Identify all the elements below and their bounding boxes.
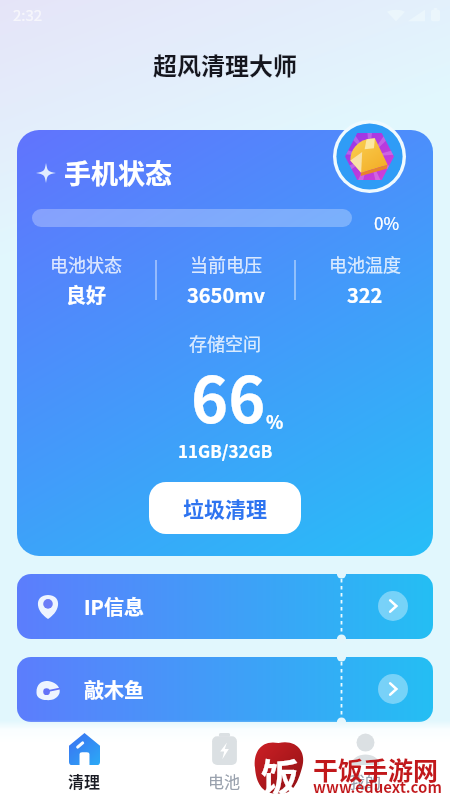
staticText: 敲木鱼 [84,675,144,704]
staticText: 干饭手游网 [313,751,439,787]
button[interactable]: 进入 [378,591,408,621]
button[interactable]: 电池 [154,720,295,800]
staticText: 清理 [68,769,101,792]
button[interactable]: IP信息 [17,574,433,639]
staticText: 我的 [349,769,382,792]
button[interactable]: 垃圾清理 [149,482,301,534]
staticText: 322 [347,280,383,309]
staticText: www.eduext.com [313,776,442,798]
button[interactable]: 清理 [14,720,154,800]
staticText: 2:32 [13,4,43,26]
staticText: 3650mv [187,280,265,309]
staticText: 当前电压 [190,251,262,277]
staticText: 饭 [261,747,300,800]
button[interactable]: 我的 [295,720,436,800]
staticText: 垃圾清理 [183,493,267,523]
staticText: 电池状态 [50,251,122,277]
staticText: % [266,408,284,434]
button[interactable]: 敲木鱼 [17,657,433,722]
staticText: 电池温度 [329,251,401,277]
staticText: 超风清理大师 [153,47,297,82]
staticText: 66 [191,350,266,441]
staticText: 存储空间 [189,330,261,356]
button[interactable]: 进入 [378,674,408,704]
button[interactable]: 奖励 [333,120,406,193]
staticText: 手机状态 [64,153,172,192]
staticText: IP信息 [84,592,144,621]
staticText: 良好 [66,280,106,309]
staticText: 0% [374,210,400,235]
staticText: 电池 [208,769,241,792]
staticText: 11GB/32GB [178,438,273,463]
